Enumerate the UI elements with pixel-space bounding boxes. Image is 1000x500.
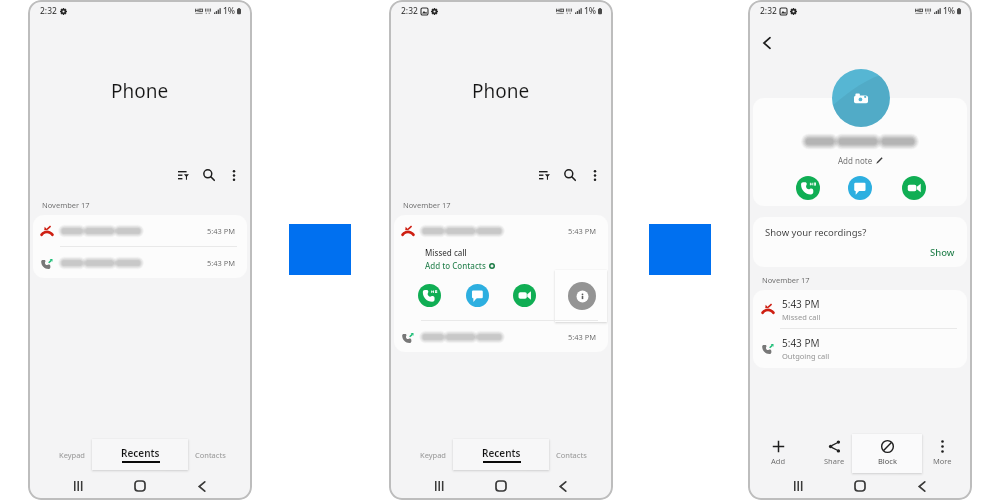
staticText: Recents bbox=[121, 446, 160, 460]
staticText: 1% bbox=[584, 5, 597, 17]
staticText: Share bbox=[824, 456, 845, 466]
button[interactable] bbox=[555, 270, 607, 322]
button[interactable]: Recents bbox=[453, 439, 549, 470]
staticText: 5:43 PM bbox=[207, 258, 236, 268]
staticText: 5:43 PM bbox=[207, 226, 236, 236]
button[interactable]: Show bbox=[930, 246, 955, 259]
button[interactable]: 5:43 PM bbox=[394, 215, 608, 246]
button[interactable]: Add note bbox=[838, 155, 883, 166]
button[interactable]: 5:43 PM bbox=[753, 329, 967, 367]
staticText: 5:43 PM bbox=[782, 336, 820, 350]
staticText: Missed call bbox=[782, 312, 821, 322]
button[interactable]: Sort bbox=[171, 163, 195, 187]
button[interactable]: Contacts bbox=[535, 437, 607, 473]
button[interactable]: Recent apps bbox=[785, 473, 811, 499]
staticText: 2:32 bbox=[40, 5, 57, 17]
staticText: More bbox=[933, 456, 952, 466]
button[interactable]: Keypad bbox=[397, 437, 469, 473]
button[interactable]: 5:43 PM bbox=[33, 215, 247, 246]
staticText: Keypad bbox=[59, 450, 85, 460]
button[interactable]: Details bbox=[568, 282, 596, 310]
staticText: 2:32 bbox=[760, 5, 777, 17]
button[interactable]: Add to Contacts bbox=[425, 260, 495, 271]
button[interactable]: 5:43 PM bbox=[394, 321, 608, 352]
button[interactable]: Video call bbox=[513, 284, 536, 307]
button[interactable]: Call bbox=[418, 284, 441, 307]
button[interactable]: Contact photo bbox=[832, 69, 890, 127]
button[interactable]: Recent apps bbox=[426, 473, 452, 499]
button[interactable]: 5:43 PM bbox=[753, 290, 967, 328]
staticText: Recents bbox=[482, 446, 521, 460]
staticText: November 17 bbox=[762, 275, 810, 285]
button[interactable]: Share bbox=[812, 432, 856, 474]
staticText: Outgoing call bbox=[782, 351, 830, 361]
button[interactable]: Home bbox=[488, 473, 514, 499]
staticText: Show your recordings? bbox=[765, 226, 867, 239]
button[interactable]: Contacts bbox=[174, 437, 246, 473]
staticText: Add bbox=[771, 456, 786, 466]
button[interactable]: Block bbox=[865, 432, 909, 474]
staticText: Phone bbox=[472, 78, 530, 104]
button[interactable]: Recents bbox=[92, 439, 188, 470]
button[interactable]: More options bbox=[583, 163, 607, 187]
button[interactable]: Message bbox=[848, 176, 872, 200]
button[interactable]: Back bbox=[909, 473, 935, 499]
staticText: 5:43 PM bbox=[568, 226, 597, 236]
staticText: November 17 bbox=[42, 200, 90, 210]
staticText: 1% bbox=[223, 5, 236, 17]
button[interactable]: Search bbox=[558, 163, 582, 187]
button[interactable]: Add bbox=[756, 432, 800, 474]
staticText: 5:43 PM bbox=[782, 297, 820, 311]
button[interactable]: Home bbox=[847, 473, 873, 499]
staticText: Keypad bbox=[420, 450, 446, 460]
button[interactable]: Video call bbox=[902, 176, 926, 200]
button[interactable]: Message bbox=[466, 284, 489, 307]
button[interactable]: Sort bbox=[532, 163, 556, 187]
button[interactable]: Keypad bbox=[36, 437, 108, 473]
button[interactable]: Recent apps bbox=[65, 473, 91, 499]
button[interactable]: Back bbox=[755, 31, 779, 55]
button[interactable]: More bbox=[920, 432, 964, 474]
staticText: Block bbox=[878, 456, 897, 466]
staticText: November 17 bbox=[403, 200, 451, 210]
button[interactable]: 5:43 PM bbox=[33, 247, 247, 278]
button[interactable]: Home bbox=[127, 473, 153, 499]
staticText: Contacts bbox=[556, 450, 587, 460]
staticText: 1% bbox=[943, 5, 956, 17]
button[interactable] bbox=[852, 434, 922, 473]
staticText: Phone bbox=[111, 78, 169, 104]
staticText: 2:32 bbox=[401, 5, 418, 17]
staticText: Contacts bbox=[195, 450, 226, 460]
button[interactable]: Back bbox=[550, 473, 576, 499]
staticText: Missed call bbox=[425, 247, 467, 258]
button[interactable]: More options bbox=[222, 163, 246, 187]
button[interactable]: Back bbox=[189, 473, 215, 499]
staticText: Add to Contacts bbox=[425, 260, 486, 271]
staticText: Add note bbox=[838, 155, 873, 166]
button[interactable]: Search bbox=[197, 163, 221, 187]
button[interactable]: Call bbox=[796, 176, 820, 200]
staticText: 5:43 PM bbox=[568, 332, 597, 342]
